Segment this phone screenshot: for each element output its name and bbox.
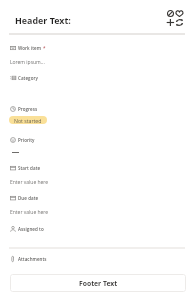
button[interactable]: Attachments bbox=[10, 254, 47, 263]
button[interactable]: Category bbox=[10, 73, 38, 82]
button[interactable]: Start date bbox=[10, 163, 41, 172]
staticText: Category bbox=[18, 75, 38, 81]
button[interactable]: Favorite bbox=[175, 9, 184, 18]
staticText: Lorem ipsum... bbox=[10, 59, 45, 66]
button[interactable]: Due date bbox=[10, 193, 39, 202]
button[interactable]: Block bbox=[166, 9, 175, 18]
button[interactable]: Progress bbox=[10, 104, 38, 113]
button[interactable]: Assigned to bbox=[10, 224, 44, 233]
button[interactable]: Footer Text bbox=[10, 274, 186, 292]
staticText: Start date bbox=[18, 165, 41, 171]
staticText: Enter value here bbox=[10, 179, 49, 186]
staticText: Footer Text bbox=[79, 279, 118, 288]
staticText: Priority bbox=[18, 137, 35, 143]
button[interactable]: Refresh bbox=[175, 18, 184, 27]
staticText: Enter value here bbox=[10, 209, 49, 216]
button[interactable]: Work item bbox=[10, 43, 46, 52]
staticText: Not started bbox=[14, 117, 42, 124]
staticText: Progress bbox=[18, 106, 38, 112]
staticText: * bbox=[43, 45, 46, 51]
button[interactable]: Priority bbox=[10, 135, 35, 144]
staticText: Due date bbox=[18, 195, 39, 201]
staticText: Header Text: bbox=[15, 14, 71, 26]
button[interactable]: Add bbox=[166, 18, 175, 27]
button[interactable]: Not started bbox=[9, 116, 47, 124]
staticText: Attachments bbox=[18, 256, 47, 262]
staticText: Assigned to bbox=[18, 226, 44, 232]
staticText: Work item bbox=[18, 45, 42, 51]
